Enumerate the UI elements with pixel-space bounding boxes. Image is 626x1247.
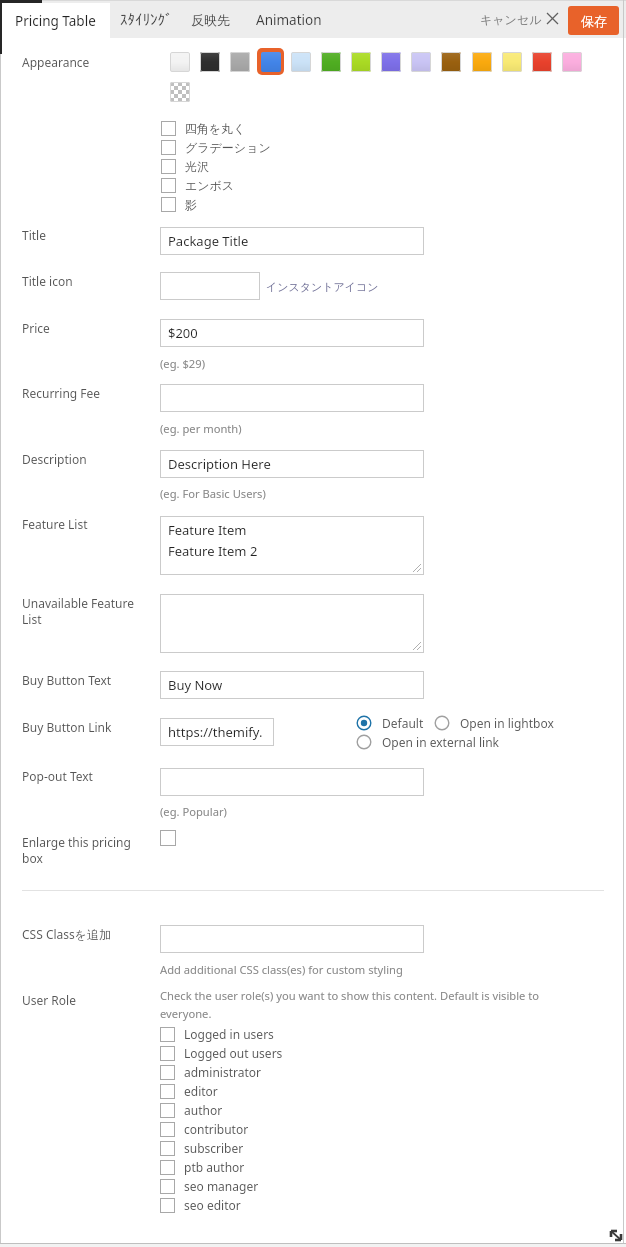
staticText: Appearance — [22, 54, 90, 70]
button[interactable]: Color swatch — [411, 52, 431, 72]
staticText: Pricing Table — [15, 12, 96, 30]
button[interactable]: Color swatch — [351, 52, 371, 72]
button[interactable]: editor — [160, 1083, 218, 1099]
button[interactable]: Color swatch — [381, 52, 401, 72]
staticText: Check the user role(s) you want to show … — [160, 988, 562, 1021]
staticText: エンボス — [185, 178, 235, 193]
staticText: Logged in users — [184, 1026, 274, 1042]
staticText: グラデーション — [185, 140, 271, 155]
staticText: seo manager — [184, 1178, 259, 1194]
staticText: Feature List — [22, 516, 88, 532]
button[interactable]: Enlarge this pricing box — [160, 830, 176, 846]
button[interactable]: Color swatch — [562, 52, 582, 72]
staticText: Title — [22, 227, 46, 243]
button[interactable]: Color swatch — [532, 52, 552, 72]
staticText: 保存 — [581, 13, 607, 29]
button[interactable]: Buy Now — [160, 671, 424, 699]
button[interactable]: キャンセル — [480, 12, 542, 27]
button[interactable]: seo manager — [160, 1178, 259, 1194]
staticText: subscriber — [184, 1140, 244, 1156]
button[interactable]: Logged in users — [160, 1026, 274, 1042]
staticText: Title icon — [22, 273, 73, 289]
button[interactable]: Color swatch — [291, 52, 311, 72]
staticText: Logged out users — [184, 1045, 283, 1061]
button[interactable]: Pricing Table — [0, 3, 110, 38]
button[interactable]: Package Title — [160, 227, 424, 255]
staticText: Package Title — [168, 232, 249, 250]
button[interactable]: 反映先 — [191, 12, 230, 28]
button[interactable]: subscriber — [160, 1140, 244, 1156]
button[interactable] — [160, 594, 424, 653]
staticText: administrator — [184, 1064, 262, 1080]
staticText: editor — [184, 1083, 218, 1099]
button[interactable]: Color swatch — [472, 52, 492, 72]
button[interactable]: Description Here — [160, 450, 424, 478]
button[interactable]: Color swatch — [200, 52, 220, 72]
staticText: (eg. For Basic Users) — [160, 486, 266, 501]
staticText: $200 — [168, 324, 198, 342]
staticText: User Role — [22, 992, 76, 1008]
button[interactable]: Transparent — [170, 82, 190, 102]
staticText: 光沢 — [185, 159, 209, 174]
button[interactable]: Color swatch — [170, 52, 190, 72]
staticText: Feature Item 2 — [168, 542, 258, 560]
staticText: 四角を丸く — [185, 121, 246, 136]
button[interactable] — [160, 272, 260, 300]
button[interactable]: seo editor — [160, 1197, 241, 1213]
button[interactable]: $200 — [160, 319, 424, 347]
button[interactable]: ｽﾀｲﾘﾝｸﾞ — [120, 12, 173, 27]
staticText: Default — [382, 715, 424, 731]
staticText: Feature Item — [168, 521, 247, 539]
staticText: Price — [22, 320, 50, 336]
button[interactable]: Close — [545, 11, 560, 26]
button[interactable]: 影 — [161, 197, 197, 212]
button[interactable]: Color swatch — [502, 52, 522, 72]
staticText: 影 — [185, 197, 197, 212]
staticText: Buy Button Link — [22, 719, 112, 735]
button[interactable]: contributor — [160, 1121, 249, 1137]
button[interactable]: ptb author — [160, 1159, 245, 1175]
button[interactable]: Feature Item — [160, 516, 424, 575]
button[interactable]: Animation — [256, 11, 322, 29]
button[interactable]: Default — [356, 715, 424, 731]
staticText: Description — [22, 451, 87, 467]
staticText: Add additional CSS class(es) for custom … — [160, 962, 403, 977]
button[interactable]: Color swatch — [441, 52, 461, 72]
staticText: Unavailable Feature List — [22, 595, 134, 627]
button[interactable]: https://themify. — [160, 718, 274, 746]
staticText: https://themify. — [168, 723, 263, 741]
staticText: CSS Classを追加 — [22, 926, 112, 942]
staticText: seo editor — [184, 1197, 241, 1213]
button[interactable]: エンボス — [161, 178, 235, 193]
button[interactable] — [160, 768, 424, 796]
staticText: Open in external link — [382, 734, 500, 750]
button[interactable]: Open in external link — [356, 734, 500, 750]
button[interactable] — [160, 384, 424, 412]
staticText: Buy Button Text — [22, 672, 112, 688]
staticText: Buy Now — [168, 676, 223, 694]
button[interactable]: 保存 — [568, 6, 619, 35]
button[interactable]: Logged out users — [160, 1045, 283, 1061]
staticText: Enlarge this pricing box — [22, 834, 131, 866]
staticText: (eg. $29) — [160, 356, 206, 371]
staticText: Animation — [256, 11, 322, 29]
button[interactable]: Color swatch selected — [257, 48, 284, 75]
button[interactable]: 四角を丸く — [161, 121, 246, 136]
button[interactable] — [160, 925, 424, 953]
staticText: Recurring Fee — [22, 385, 101, 401]
button[interactable]: author — [160, 1102, 223, 1118]
staticText: (eg. per month) — [160, 421, 242, 436]
button[interactable]: administrator — [160, 1064, 262, 1080]
button[interactable]: インスタントアイコン — [266, 280, 379, 294]
button[interactable]: Open in lightbox — [434, 715, 554, 731]
button[interactable]: Color swatch — [230, 52, 250, 72]
staticText: ptb author — [184, 1159, 245, 1175]
staticText: キャンセル — [480, 12, 542, 27]
staticText: インスタントアイコン — [266, 280, 379, 294]
staticText: contributor — [184, 1121, 249, 1137]
button[interactable]: 光沢 — [161, 159, 209, 174]
button[interactable]: Resize — [609, 1228, 623, 1242]
staticText: Description Here — [168, 455, 271, 473]
button[interactable]: グラデーション — [161, 140, 271, 155]
button[interactable]: Color swatch — [321, 52, 341, 72]
